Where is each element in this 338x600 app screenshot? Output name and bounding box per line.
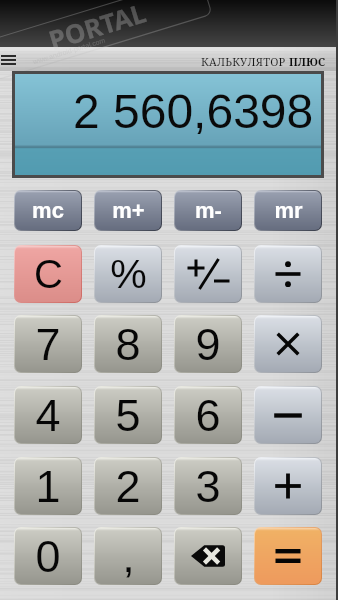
button[interactable]: − [254, 386, 322, 444]
button[interactable]: 6 [174, 386, 242, 444]
button[interactable]: 0 [14, 527, 82, 585]
button[interactable]: 7 [14, 315, 82, 373]
button[interactable]: 5 [94, 386, 162, 444]
staticText: , [122, 531, 135, 581]
button[interactable]: 1 [14, 457, 82, 515]
staticText: 5 [115, 390, 141, 440]
button[interactable]: × [254, 315, 322, 373]
staticText: mc [32, 198, 64, 223]
staticText: 7 [35, 319, 61, 369]
staticText: 6 [195, 390, 221, 440]
staticText: 3 [195, 461, 221, 511]
button[interactable]: 3 [174, 457, 242, 515]
button[interactable]: 2 [94, 457, 162, 515]
button[interactable]: % [94, 245, 162, 303]
button[interactable]: m- [174, 190, 242, 231]
staticText: 2 560,6398 [73, 85, 314, 139]
staticText: mr [274, 198, 303, 223]
staticText: m- [195, 198, 222, 223]
staticText: PORTAL [44, 0, 150, 57]
button[interactable]: C [14, 245, 82, 303]
button[interactable]: 9 [174, 315, 242, 373]
button[interactable]: 8 [94, 315, 162, 373]
button[interactable]: mc [14, 190, 82, 231]
staticText: m+ [112, 198, 145, 223]
button[interactable]: + [254, 457, 322, 515]
staticText: C [34, 252, 63, 297]
button[interactable]: m+ [94, 190, 162, 231]
staticText: 9 [195, 319, 221, 369]
button[interactable]: Backspace [174, 527, 242, 585]
staticText: % [110, 251, 147, 297]
button[interactable]: +/- [174, 245, 242, 303]
button[interactable]: Menu [0, 52, 16, 68]
button[interactable]: = [254, 527, 322, 585]
staticText: КАЛЬКУЛЯТОР [201, 54, 286, 69]
staticText: www.android-portal.com [32, 36, 107, 66]
staticText: 8 [115, 319, 141, 369]
button[interactable]: mr [254, 190, 322, 231]
staticText: 4 [35, 390, 61, 440]
staticText: ПЛЮС [289, 54, 326, 69]
staticText: 0 [35, 531, 61, 581]
button[interactable]: 4 [14, 386, 82, 444]
button[interactable]: ÷ [254, 245, 322, 303]
button[interactable]: , [94, 527, 162, 585]
staticText: 2 [115, 461, 141, 511]
staticText: 1 [35, 461, 61, 511]
